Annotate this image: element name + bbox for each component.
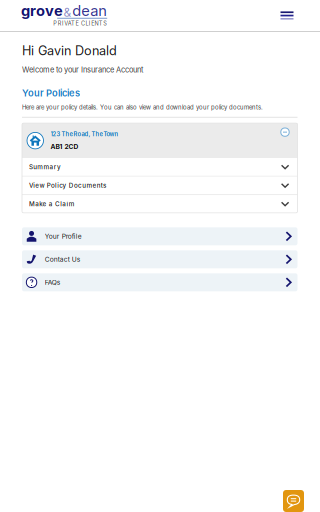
button[interactable]: Chat bbox=[283, 490, 304, 512]
staticText: PRIVATE CLIENTS bbox=[53, 20, 107, 27]
staticText: Make a Claim bbox=[29, 200, 74, 208]
button[interactable]: Menu bbox=[272, 0, 301, 31]
staticText: Summary bbox=[29, 163, 61, 171]
button[interactable]: Collapse policy bbox=[278, 126, 291, 139]
staticText: 123 The Road, The Town bbox=[50, 130, 118, 138]
staticText: dean bbox=[72, 2, 107, 19]
staticText: Your Profile bbox=[45, 232, 82, 240]
staticText: grove bbox=[21, 2, 63, 19]
staticText: Your Policies bbox=[22, 87, 80, 99]
staticText: Welcome to your Insurance Account bbox=[22, 65, 143, 74]
staticText: AB1 2CD bbox=[50, 143, 78, 151]
staticText: & bbox=[64, 5, 72, 20]
staticText: View Policy Documents bbox=[29, 182, 106, 189]
staticText: FAQs bbox=[45, 278, 61, 286]
staticText: Hi Gavin Donald bbox=[22, 43, 117, 58]
button[interactable]: Summary bbox=[22, 158, 297, 177]
staticText: Here are your policy details. You can al… bbox=[22, 104, 263, 111]
button[interactable]: Your Profile bbox=[22, 227, 297, 245]
staticText: Contact Us bbox=[45, 255, 81, 263]
button[interactable]: View Policy Documents bbox=[22, 177, 297, 195]
button[interactable]: Contact Us bbox=[22, 250, 297, 268]
button[interactable]: Make a Claim bbox=[22, 195, 297, 213]
button[interactable]: FAQs bbox=[22, 273, 297, 291]
